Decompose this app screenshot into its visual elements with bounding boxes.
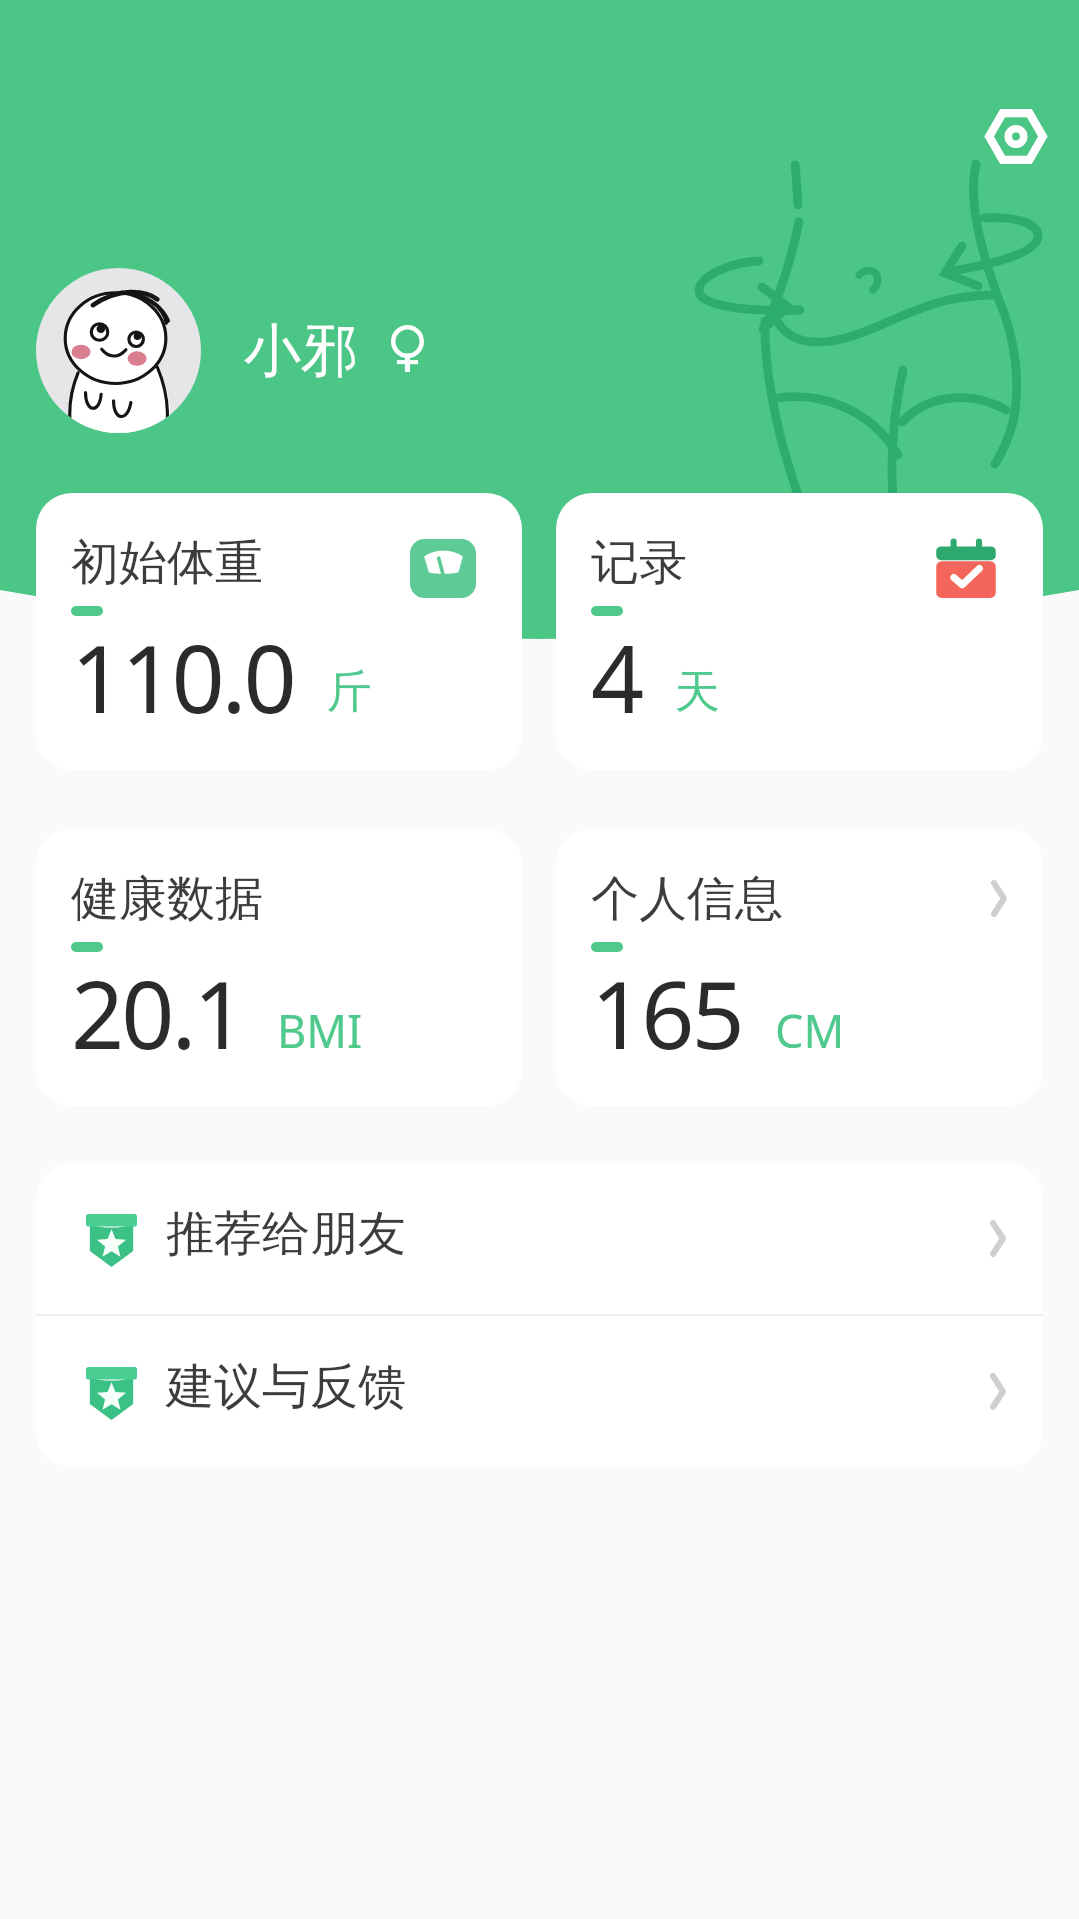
staticText: 天	[675, 664, 720, 721]
staticText: 110.0	[71, 614, 294, 741]
button[interactable]: 个人信息	[556, 829, 1043, 1106]
staticText: 165	[591, 950, 742, 1077]
staticText: 斤	[327, 664, 372, 721]
button[interactable]: 建议与反馈	[36, 1316, 1043, 1467]
staticText: 小邪	[244, 315, 358, 387]
staticText: 4	[591, 614, 642, 741]
staticText: 建议与反馈	[166, 1357, 406, 1417]
staticText: CM	[775, 1000, 845, 1061]
other: Profile photo	[36, 268, 201, 433]
button[interactable]: 初始体重	[36, 493, 522, 770]
button[interactable]: Profile photo	[36, 268, 424, 433]
staticText: BMI	[277, 1000, 363, 1061]
staticText: 记录	[591, 533, 687, 593]
staticText: 初始体重	[71, 533, 263, 593]
staticText: 推荐给朋友	[166, 1204, 406, 1264]
staticText: 健康数据	[71, 869, 263, 929]
staticText: 个人信息	[591, 869, 783, 929]
staticText: 20.1	[71, 950, 244, 1077]
button[interactable]: Settings	[954, 75, 1077, 198]
button[interactable]: 健康数据	[36, 829, 522, 1106]
button[interactable]: 推荐给朋友	[36, 1163, 1043, 1314]
button[interactable]: 记录	[556, 493, 1043, 770]
